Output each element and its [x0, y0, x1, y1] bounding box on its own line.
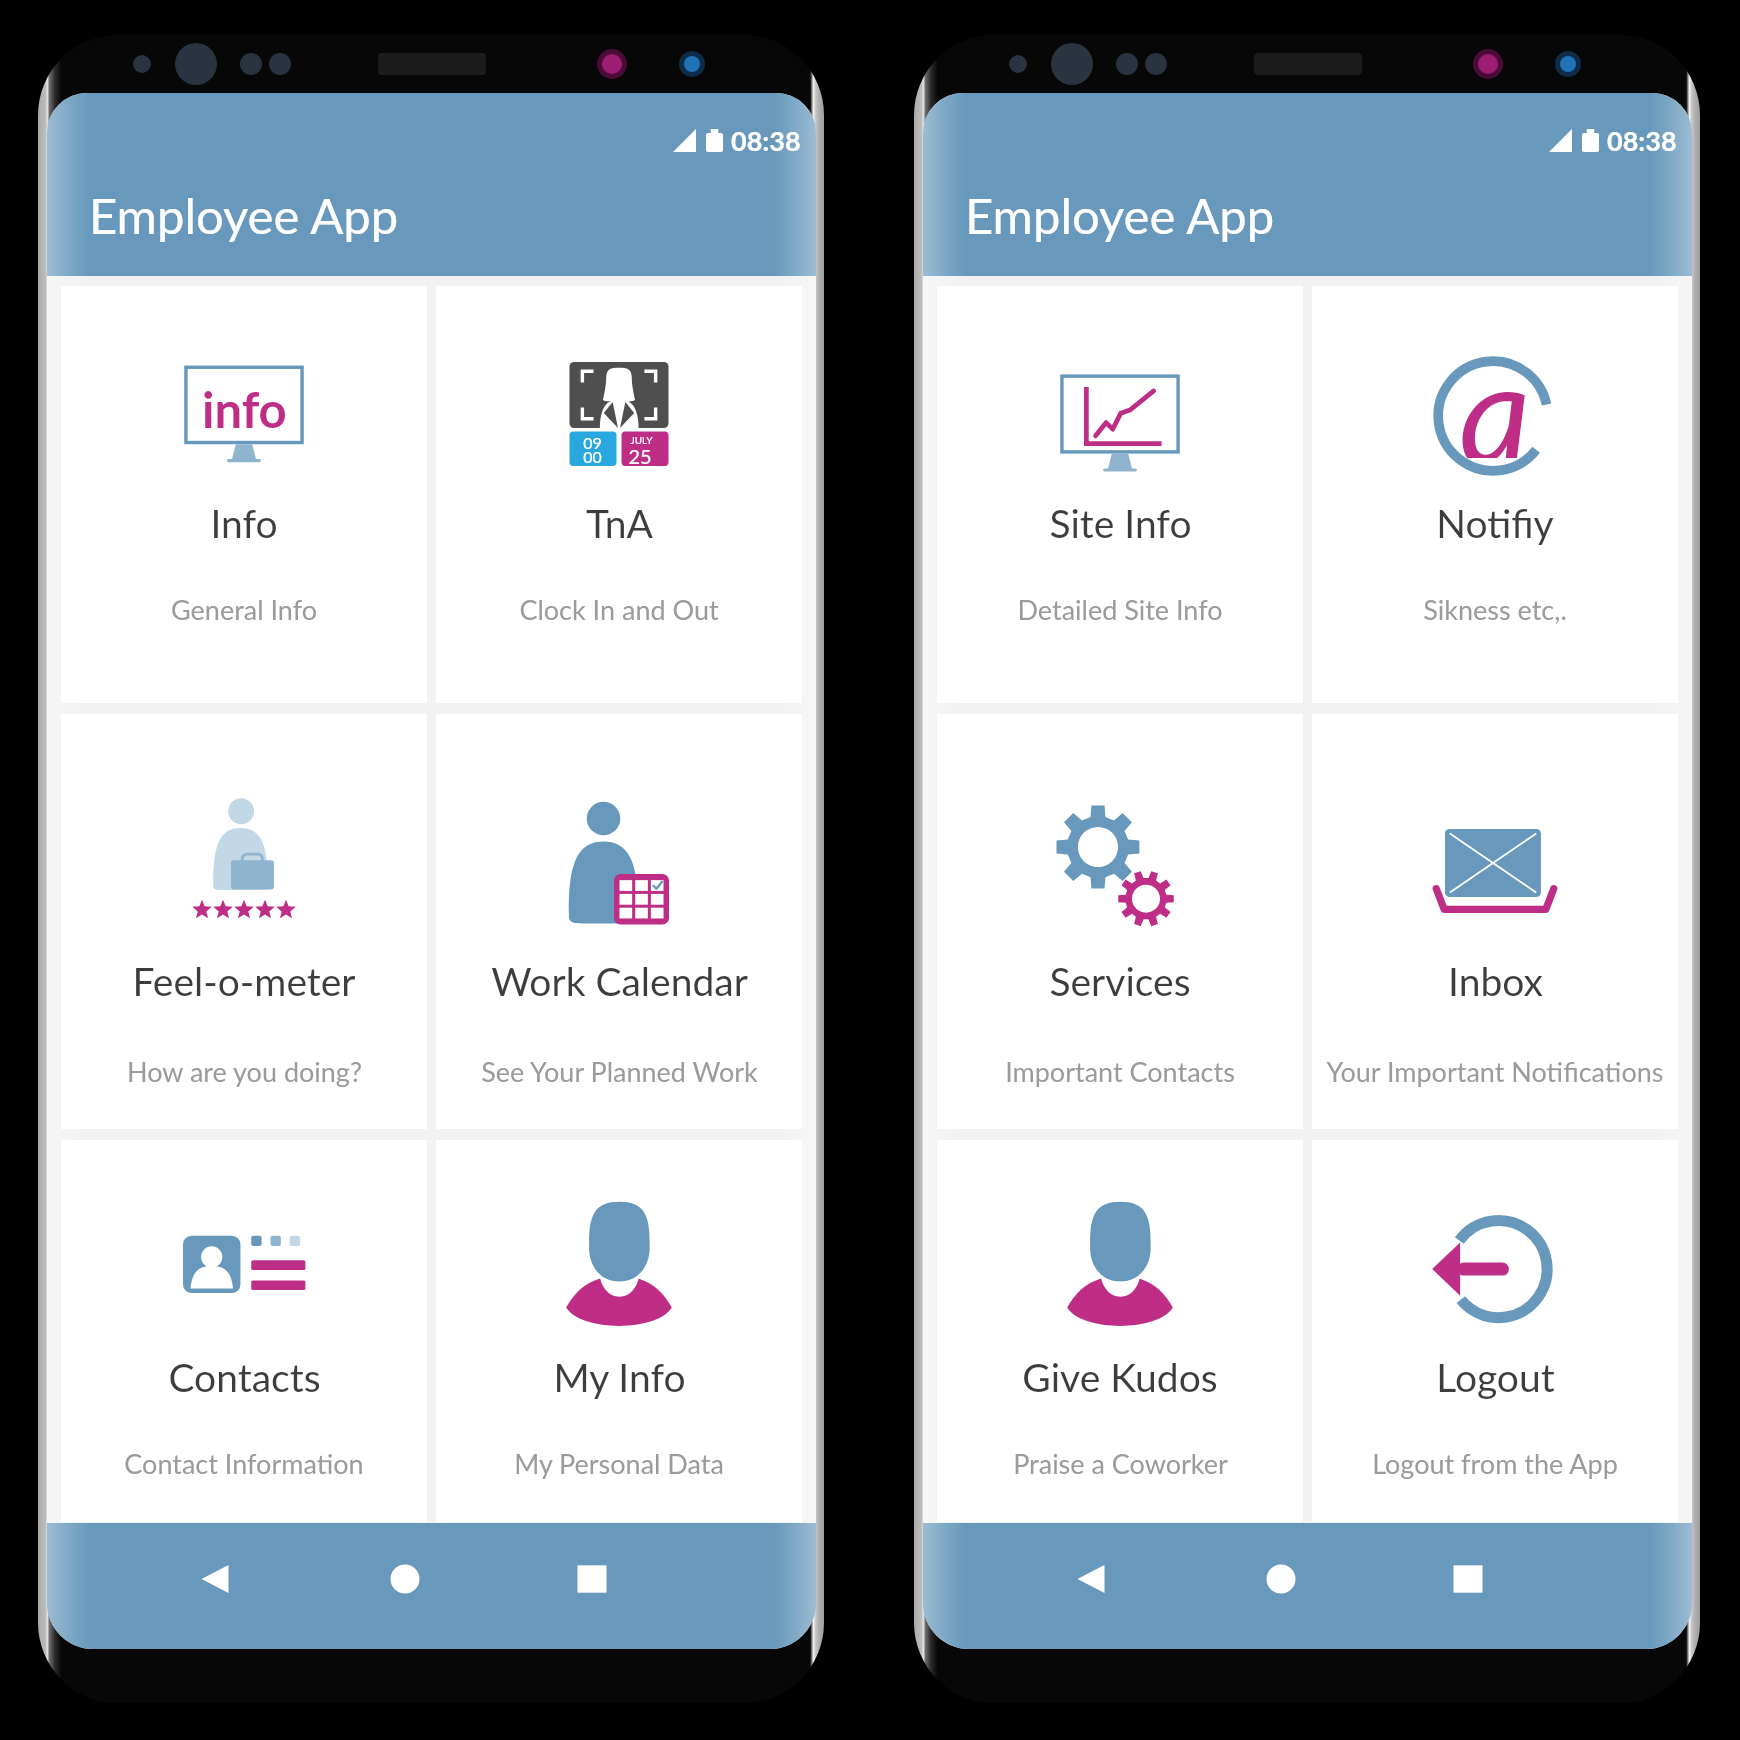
staticText: Detailed Site Info: [1017, 593, 1223, 625]
staticText: info: [202, 380, 287, 439]
staticText: Services: [1049, 958, 1191, 1005]
staticText: TnA: [586, 500, 653, 547]
button[interactable]: Inbox: [1312, 714, 1678, 1129]
button[interactable]: info: [61, 286, 427, 703]
staticText: Employee App: [89, 186, 399, 245]
button[interactable]: Logout: [1312, 1140, 1678, 1522]
staticText: JULY: [630, 434, 653, 446]
button[interactable]: Back: [1061, 1549, 1121, 1609]
button[interactable]: Home: [375, 1549, 435, 1609]
button[interactable]: Recent apps: [1438, 1549, 1498, 1609]
staticText: Praise a Coworker: [1013, 1447, 1228, 1479]
staticText: Logout: [1436, 1354, 1555, 1401]
staticText: Contacts: [168, 1354, 321, 1401]
button[interactable]: a: [1312, 286, 1678, 703]
staticText: Give Kudos: [1022, 1354, 1218, 1401]
staticText: Clock In and Out: [519, 593, 719, 625]
staticText: Sikness etc,.: [1423, 593, 1567, 625]
button[interactable]: Services: [937, 714, 1303, 1129]
staticText: 25: [628, 444, 652, 468]
staticText: General Info: [171, 593, 317, 625]
staticText: Info: [210, 500, 278, 547]
staticText: Important Contacts: [1005, 1055, 1235, 1087]
staticText: 08:38: [1607, 124, 1677, 156]
staticText: Employee App: [965, 186, 1275, 245]
button[interactable]: 09 00: [436, 286, 802, 703]
staticText: Work Calendar: [491, 958, 748, 1005]
button[interactable]: Give Kudos: [937, 1140, 1303, 1522]
staticText: Logout from the App: [1372, 1447, 1618, 1479]
staticText: Site Info: [1049, 500, 1192, 547]
button[interactable]: Home: [1251, 1549, 1311, 1609]
button[interactable]: My Info: [436, 1140, 802, 1522]
button[interactable]: Site Info: [937, 286, 1303, 703]
staticText: a: [1459, 326, 1531, 458]
staticText: Notifiy: [1436, 500, 1554, 547]
staticText: My Personal Data: [514, 1447, 724, 1479]
staticText: Your Important Notifications: [1326, 1055, 1664, 1087]
staticText: How are you doing?: [127, 1055, 362, 1087]
button[interactable]: Back: [185, 1549, 245, 1609]
staticText: Feel-o-meter: [132, 958, 356, 1005]
staticText: 09 00: [583, 433, 602, 466]
button[interactable]: Contacts: [61, 1140, 427, 1522]
staticText: See Your Planned Work: [481, 1055, 758, 1087]
staticText: Inbox: [1448, 958, 1543, 1005]
button[interactable]: Recent apps: [562, 1549, 622, 1609]
staticText: Contact Information: [124, 1447, 364, 1479]
staticText: 08:38: [731, 124, 801, 156]
button[interactable]: Work Calendar: [436, 714, 802, 1129]
staticText: My Info: [553, 1354, 686, 1401]
button[interactable]: Feel-o-meter: [61, 714, 427, 1129]
